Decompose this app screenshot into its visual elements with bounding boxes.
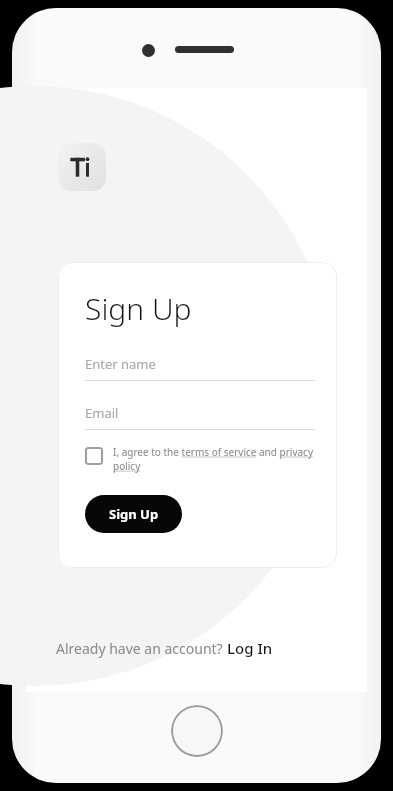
staticText: I, agree to the terms of service and pri… (113, 445, 315, 473)
staticText: Sign Up (85, 288, 192, 329)
staticText: Email (85, 404, 119, 422)
button[interactable]: Home (171, 705, 223, 757)
staticText: Already have an account? (56, 639, 227, 658)
button[interactable]: App logo (58, 143, 106, 191)
button[interactable]: Already have an account? (56, 638, 273, 658)
button[interactable]: Sign Up (85, 495, 182, 533)
staticText: Enter name (85, 355, 156, 373)
staticText: Log In (227, 638, 273, 658)
staticText: Sign Up (109, 505, 159, 523)
button[interactable]: Agree to terms (85, 445, 315, 473)
other: Agree to terms (85, 447, 103, 465)
